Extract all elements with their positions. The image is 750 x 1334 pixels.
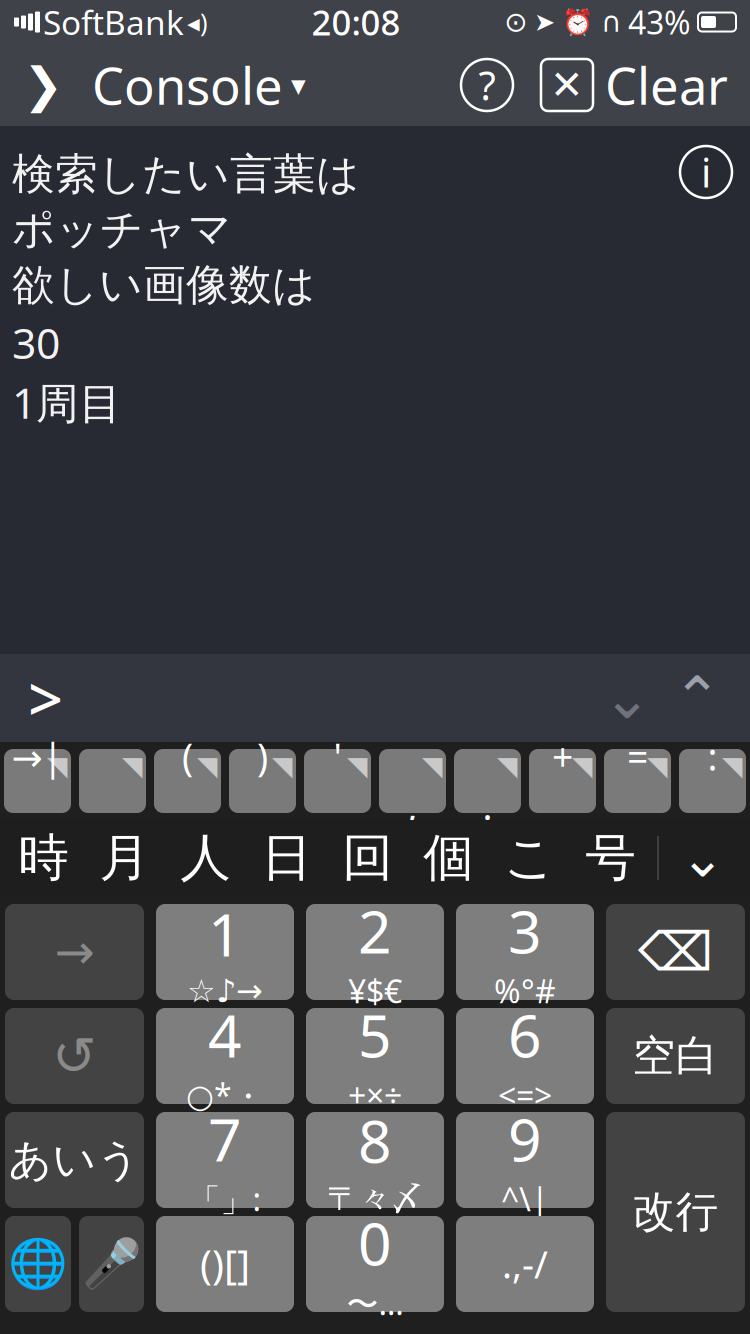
staticText: ◥ [347, 751, 368, 781]
staticText: 改行 [632, 1186, 718, 1238]
staticText: 回 [342, 827, 393, 889]
button[interactable]: Dictation [79, 1216, 144, 1312]
staticText: ◥ [47, 751, 68, 781]
staticText: 0 [358, 1204, 392, 1282]
button[interactable]: ()[] [156, 1216, 294, 1312]
staticText: 1周目 [12, 374, 122, 431]
button[interactable]: 5 [306, 1008, 444, 1104]
staticText: <=> [498, 1074, 552, 1116]
staticText: : [707, 731, 717, 781]
button[interactable]: Console [86, 47, 312, 123]
staticText: 1 [208, 895, 242, 973]
button[interactable]: Hide suggestions [659, 820, 747, 896]
button[interactable]: 個 [408, 820, 489, 896]
button[interactable]: Delete [606, 904, 745, 1000]
button[interactable]: Show sidebar [0, 47, 86, 123]
button[interactable]: Close [541, 59, 593, 111]
staticText: > [28, 657, 63, 739]
button[interactable]: 3 [456, 904, 594, 1000]
staticText: ⏰ [562, 7, 594, 36]
staticText: 「」: [188, 1178, 261, 1220]
staticText: ◥ [122, 751, 143, 781]
staticText: . [482, 781, 492, 831]
button[interactable]: ◥ [454, 749, 521, 813]
button[interactable]: Scroll down [592, 655, 662, 741]
button[interactable]: ◥ [529, 749, 596, 813]
staticText: ◥ [497, 751, 518, 781]
button[interactable]: ◥ [79, 749, 146, 813]
staticText: あいう [8, 1134, 140, 1186]
staticText: ()[] [200, 1237, 250, 1290]
staticText: ⌫ [638, 922, 713, 982]
button[interactable]: 時 [3, 820, 84, 896]
staticText: ⌄ [602, 665, 651, 731]
staticText: 3 [508, 892, 542, 970]
button[interactable]: 月 [84, 820, 165, 896]
button[interactable]: Scroll up [662, 655, 732, 741]
staticText: ∩ [601, 6, 621, 38]
staticText: +×÷ [348, 1074, 402, 1116]
staticText: 〒々〆 [327, 1179, 423, 1219]
staticText: 4 [208, 996, 242, 1074]
button[interactable]: ◥ [679, 749, 746, 813]
button[interactable]: Undo [5, 1008, 144, 1104]
staticText: →| [11, 731, 63, 781]
staticText: 🌐 [8, 1237, 68, 1291]
button[interactable]: .,-/ [456, 1216, 594, 1312]
staticText: ▾ [291, 68, 306, 102]
button[interactable]: 2 [306, 904, 444, 1000]
staticText: 欲しい画像数は [12, 259, 316, 311]
button[interactable]: Help [461, 59, 513, 111]
staticText: 個 [423, 827, 474, 889]
button[interactable]: 8 [306, 1112, 444, 1208]
staticText: ¥$€ [348, 970, 402, 1012]
staticText: = [627, 731, 648, 781]
button[interactable]: ◥ [154, 749, 221, 813]
button[interactable]: 日 [246, 820, 327, 896]
button[interactable]: 9 [456, 1112, 594, 1208]
staticText: 2 [358, 892, 392, 970]
staticText: 43% [628, 1, 691, 43]
staticText: ◥ [422, 751, 443, 781]
staticText: 号 [585, 827, 636, 889]
staticText: ^\| [501, 1178, 549, 1220]
button[interactable]: 4 [156, 1008, 294, 1104]
staticText: ✕ [550, 62, 584, 108]
button[interactable]: Info [680, 146, 732, 198]
staticText: ⌄ [680, 828, 725, 888]
staticText: SoftBank [43, 0, 184, 44]
button[interactable]: ◥ [604, 749, 671, 813]
button[interactable]: Cursor right [5, 904, 144, 1000]
staticText: 9 [508, 1100, 542, 1178]
button[interactable]: 回 [327, 820, 408, 896]
button[interactable]: Space [606, 1008, 745, 1104]
staticText: ◥ [197, 751, 218, 781]
staticText: ○*・ [186, 1074, 264, 1116]
button[interactable]: 0 [306, 1216, 444, 1312]
button[interactable]: ◥ [229, 749, 296, 813]
button[interactable]: 号 [570, 820, 651, 896]
button[interactable]: 7 [156, 1112, 294, 1208]
staticText: ◥ [572, 751, 593, 781]
button[interactable]: ◥ [304, 749, 371, 813]
button[interactable]: Clear [593, 47, 740, 123]
staticText: Clear [605, 51, 728, 119]
button[interactable]: Return [606, 1112, 745, 1312]
staticText: ポッチャマ [12, 203, 232, 256]
staticText: ⌃ [672, 665, 721, 731]
button[interactable]: ◥ [4, 749, 71, 813]
staticText: + [552, 731, 573, 781]
button[interactable]: 人 [165, 820, 246, 896]
button[interactable]: Next keyboard [5, 1216, 71, 1312]
staticText: ☆♪→ [187, 973, 263, 1009]
staticText: ❯ [23, 58, 63, 112]
button[interactable]: ◥ [379, 749, 446, 813]
button[interactable]: Japanese keyboard [5, 1112, 144, 1208]
staticText: 月 [99, 827, 150, 889]
button[interactable]: こ [489, 820, 570, 896]
staticText: 〜… [346, 1282, 403, 1324]
staticText: .,-/ [502, 1239, 548, 1289]
button[interactable]: 1 [156, 904, 294, 1000]
staticText: 30 [12, 314, 60, 371]
button[interactable]: 6 [456, 1008, 594, 1104]
